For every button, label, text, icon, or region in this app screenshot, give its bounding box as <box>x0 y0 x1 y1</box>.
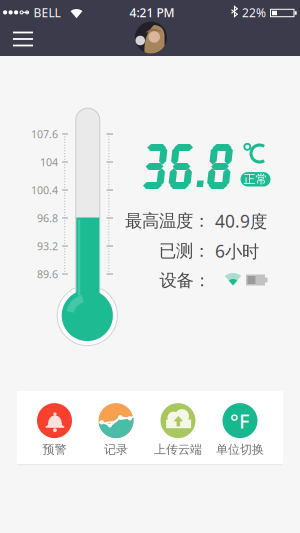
staticText: 记录 <box>104 442 128 457</box>
button[interactable]: 上传云端 <box>154 403 202 457</box>
staticText: 104 <box>40 155 58 169</box>
staticText: 93.2 <box>37 239 58 253</box>
staticText: 单位切换 <box>216 442 264 457</box>
staticText: 最高温度： <box>125 210 210 232</box>
staticText: 已测： <box>159 240 210 262</box>
button[interactable]: 预警 <box>37 403 72 457</box>
staticText: 40.9度 <box>215 209 267 232</box>
staticText: 预警 <box>42 442 66 457</box>
staticText: 4:21 PM <box>129 5 174 21</box>
button[interactable]: 记录 <box>98 403 133 457</box>
staticText: BELL <box>33 5 60 21</box>
staticText: 100.4 <box>31 183 58 197</box>
staticText: 107.6 <box>31 127 58 141</box>
button[interactable]: °F <box>216 403 264 457</box>
button[interactable] <box>135 21 167 53</box>
staticText: 上传云端 <box>154 442 202 457</box>
staticText: 正常 <box>243 172 267 187</box>
staticText: 96.8 <box>37 211 58 225</box>
staticText: 89.6 <box>37 267 58 281</box>
staticText: °F <box>230 407 250 434</box>
staticText: 设备： <box>159 270 210 291</box>
staticText: 22% <box>242 5 266 21</box>
button[interactable] <box>13 25 33 53</box>
staticText: 6小时 <box>215 239 259 262</box>
